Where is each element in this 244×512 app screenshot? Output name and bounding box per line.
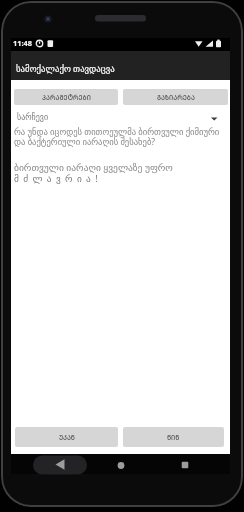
staticText: 11:48 — [13, 38, 32, 48]
button[interactable] — [33, 455, 87, 475]
staticText: და ბაქტერიული იარაღის შესახებ? — [14, 136, 156, 148]
staticText: ᲒᲐᲖᲘᲐᲠᲔᲑᲐ — [157, 93, 195, 102]
staticText: ᲞᲐᲠᲐᲛᲔᲢᲠᲔᲑᲘ — [42, 93, 91, 102]
staticText: ᲬᲘᲜ — [167, 433, 180, 442]
button[interactable]: ᲬᲘᲜ — [123, 427, 224, 447]
staticText: სამოქალაქო თავდაცვა — [16, 63, 115, 75]
button[interactable]: ᲣᲙᲐᲜ — [15, 427, 118, 447]
button[interactable]: ᲞᲐᲠᲐᲛᲔᲢᲠᲔᲑᲘ — [14, 89, 118, 105]
button[interactable] — [107, 455, 135, 475]
staticText: ბირთვული იარაღი ყველაზე უფრო — [14, 161, 173, 174]
button[interactable] — [171, 455, 199, 475]
staticText: ᲣᲙᲐᲜ — [59, 433, 75, 442]
staticText: რა უნდა იცოდეს თითოეულმა ბირთვული ქიმიურ… — [14, 126, 220, 138]
staticText: სარჩევი — [17, 113, 49, 122]
staticText: მ ძ ლ ა ვ რ ი ა ! — [14, 172, 99, 185]
button[interactable]: სარჩევი — [11, 109, 230, 127]
button[interactable]: ᲒᲐᲖᲘᲐᲠᲔᲑᲐ — [123, 89, 228, 105]
